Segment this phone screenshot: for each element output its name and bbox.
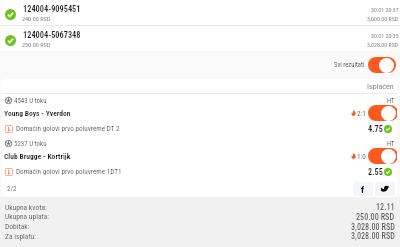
staticText: 2.55 bbox=[368, 167, 383, 177]
staticText: Ukupna uplata: bbox=[5, 212, 50, 221]
staticText: 250.00 RSD bbox=[356, 212, 395, 222]
staticText: 2/2 bbox=[7, 185, 17, 193]
button[interactable]: Svi rezultati toggle bbox=[368, 57, 396, 73]
staticText: Domaćin golovi prvo poluvreme DT 2 bbox=[16, 124, 120, 132]
staticText: 1:0 bbox=[357, 152, 366, 160]
staticText: Svi rezultati bbox=[334, 61, 365, 69]
staticText: f bbox=[361, 184, 365, 195]
staticText: HT bbox=[387, 140, 395, 148]
staticText: 5237 U toku bbox=[14, 140, 47, 148]
staticText: 3,028.00 RSD bbox=[351, 222, 395, 232]
staticText: L bbox=[8, 169, 11, 176]
staticText: L bbox=[8, 126, 11, 133]
staticText: Dobitak: bbox=[5, 222, 30, 231]
staticText: Za isplatu: bbox=[5, 232, 36, 241]
staticText: 124004-9095451 bbox=[23, 4, 81, 14]
button[interactable]: 124004-9095451 bbox=[0, 0, 400, 25]
staticText: Isplaćen bbox=[367, 82, 394, 91]
button[interactable]: Expand match 2 bbox=[368, 148, 397, 164]
staticText: 12.11 bbox=[376, 202, 395, 212]
button[interactable]: Svi rezultati bbox=[334, 57, 396, 73]
button[interactable]: Expand match 1 bbox=[368, 105, 397, 121]
staticText: 3,028.00 RSD bbox=[351, 231, 395, 241]
staticText: 4543 U toku bbox=[14, 97, 47, 105]
staticText: 3,000.00 RSD bbox=[367, 16, 399, 23]
staticText: 30.01 20:37 bbox=[371, 7, 399, 14]
staticText: 240.00 RSD bbox=[22, 15, 51, 22]
button[interactable]: Share on Facebook bbox=[353, 182, 373, 196]
staticText: Ukupna kvota: bbox=[5, 203, 47, 212]
staticText: Club Brugge - Kortrijk bbox=[4, 152, 71, 161]
staticText: 3,028.00 RSD bbox=[367, 42, 399, 49]
staticText: 30.01 20:35 bbox=[371, 33, 399, 40]
staticText: Young Boys - Yverdon bbox=[4, 109, 71, 118]
staticText: 250.00 RSD bbox=[22, 41, 51, 48]
staticText: HT bbox=[387, 97, 395, 105]
button[interactable]: Share on Twitter bbox=[375, 182, 395, 196]
button[interactable]: 5237 U toku bbox=[2, 137, 397, 180]
staticText: 4.75 bbox=[368, 124, 383, 134]
staticText: 124004-5067348 bbox=[23, 30, 81, 40]
button[interactable]: 124004-5067348 bbox=[0, 26, 400, 51]
staticText: Domaćin golovi prvo poluvreme 1DT1 bbox=[16, 167, 122, 175]
staticText: 2:1 bbox=[357, 109, 366, 117]
button[interactable]: 4543 U toku bbox=[2, 94, 397, 137]
